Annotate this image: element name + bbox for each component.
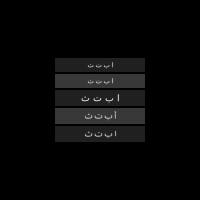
staticText: ﺍ ﺏ ﺕ ﺙ (87, 61, 113, 69)
staticText: ا ب ت ث (84, 126, 116, 142)
staticText: ا ب ت ث (87, 77, 113, 85)
staticText: أ ب ت ث (84, 108, 116, 124)
staticText: ا ب ت ث (80, 93, 119, 103)
